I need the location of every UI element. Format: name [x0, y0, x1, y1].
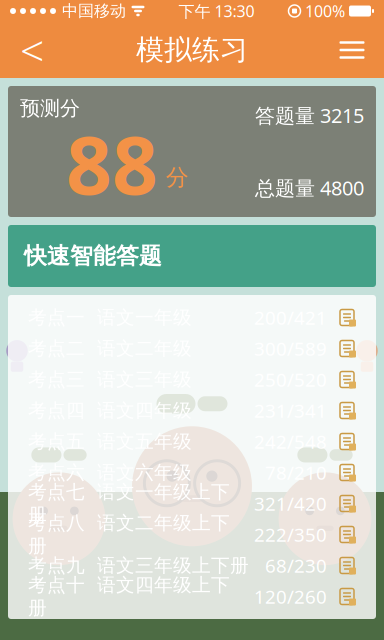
staticText: 模拟练习	[136, 33, 248, 67]
staticText: 200/421	[254, 305, 327, 330]
staticText: 78/210	[265, 460, 327, 485]
button[interactable]: 快速智能答题	[8, 225, 376, 287]
staticText: 300/589	[254, 336, 327, 361]
button[interactable]: 考点八 语文二年级上下册	[8, 519, 376, 550]
staticText: 考点六 语文六年级	[28, 461, 192, 484]
button[interactable]: 考点七 语文一年级上下册	[8, 488, 376, 519]
staticText: 考点八 语文二年级上下册	[28, 512, 230, 557]
staticText: 120/260	[254, 584, 327, 609]
staticText: 预测分	[20, 96, 80, 121]
staticText: 考点四 语文四年级	[28, 399, 192, 422]
staticText: 答题量 3215	[255, 102, 364, 129]
staticText: 总题量 4800	[255, 174, 364, 201]
button[interactable]: 考点九 语文三年级上下册	[8, 550, 376, 581]
staticText: 88	[66, 110, 158, 217]
button[interactable]: 考点六 语文六年级	[8, 457, 376, 488]
button[interactable]: 考点五 语文五年级	[8, 426, 376, 457]
staticText: 68/230	[265, 553, 327, 578]
staticText: 250/520	[254, 367, 327, 392]
staticText: 下午 13:30	[178, 0, 254, 22]
staticText: 快速智能答题	[24, 242, 162, 270]
button[interactable]: 考点二 语文二年级	[8, 333, 376, 364]
staticText: 考点五 语文五年级	[28, 430, 192, 453]
staticText: <	[20, 22, 44, 78]
staticText: 321/420	[254, 491, 327, 516]
staticText: 分	[166, 164, 189, 191]
button[interactable]: 考点四 语文四年级	[8, 395, 376, 426]
button[interactable]: 菜单	[326, 24, 378, 76]
staticText: 中国移动	[62, 1, 126, 21]
staticText: 考点九 语文三年级上下册	[28, 554, 249, 577]
button[interactable]: 考点三 语文三年级	[8, 364, 376, 395]
staticText: 242/548	[254, 429, 327, 454]
button[interactable]: 考点一 语文一年级	[8, 302, 376, 333]
staticText: 考点十 语文四年级上下册	[28, 574, 230, 619]
staticText: 考点七 语文一年级上下册	[28, 481, 230, 526]
button[interactable]: 返回	[6, 24, 58, 76]
staticText: 222/350	[254, 522, 327, 547]
staticText: 100%	[305, 0, 345, 22]
button[interactable]: 考点十 语文四年级上下册	[8, 581, 376, 612]
